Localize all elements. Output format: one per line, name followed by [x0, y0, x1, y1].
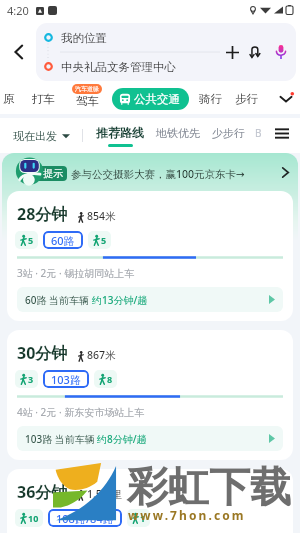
staticText: 4:20	[7, 3, 29, 18]
button[interactable]: Back	[4, 37, 34, 67]
staticText: 103路 当前车辆	[25, 432, 95, 446]
staticText: 3站 · 2元 · 锡拉胡同站上车	[17, 266, 135, 280]
staticText: 3	[28, 373, 34, 385]
staticText: 30分钟	[17, 342, 68, 364]
staticText: 103路	[51, 372, 81, 387]
staticText: 公共交通	[134, 92, 180, 106]
button[interactable]: 公共交通	[112, 88, 189, 110]
button[interactable]: 30分钟	[7, 330, 293, 460]
staticText: 约13分钟/趟	[92, 293, 148, 307]
button[interactable]: Add waypoint	[220, 40, 244, 64]
button[interactable]: 103路 当前车辆	[17, 426, 283, 451]
staticText: 我的位置	[61, 31, 107, 45]
staticText: 60路	[51, 233, 75, 248]
button[interactable]: 现在出发	[13, 129, 70, 143]
staticText: 5	[28, 234, 34, 246]
staticText: 36分钟	[17, 481, 68, 503]
staticText: 汽车道缘	[75, 85, 99, 93]
staticText: 1	[140, 512, 146, 524]
staticText: 4站 · 2元 · 新东安市场站上车	[17, 405, 145, 419]
button[interactable]: 驾车	[76, 94, 99, 108]
staticText: 854米	[87, 209, 116, 223]
staticText: 8	[107, 373, 113, 385]
button[interactable]: 步行	[235, 92, 258, 106]
button[interactable]: 推荐路线	[96, 125, 144, 147]
staticText: 60路 当前车辆	[25, 293, 90, 307]
button[interactable]: 28分钟	[7, 191, 293, 321]
button[interactable]: 骑行	[199, 92, 222, 106]
button[interactable]: 我的位置	[36, 23, 220, 52]
button[interactable]: 60路 当前车辆	[17, 287, 283, 312]
button[interactable]: Voice search	[268, 39, 294, 65]
staticText: 28分钟	[17, 203, 68, 225]
button[interactable]: 36分钟	[7, 469, 293, 533]
button[interactable]: Expand travel modes	[274, 87, 298, 111]
button[interactable]: 打车	[32, 92, 55, 106]
staticText: B	[255, 126, 262, 140]
staticText: 108路/84路	[56, 511, 114, 526]
staticText: 参与公交摄影大赛，赢100元京东卡→	[71, 167, 245, 181]
staticText: 中央礼品文务管理中心	[61, 60, 176, 74]
staticText: 彩虹下载	[127, 462, 291, 514]
staticText: 1.5公里	[87, 487, 123, 501]
staticText: 10	[28, 512, 39, 524]
button[interactable]: Swap start and destination	[244, 40, 268, 64]
button[interactable]: 原	[3, 92, 15, 106]
staticText: 现在出发	[13, 129, 57, 143]
staticText: 提示	[43, 167, 63, 180]
staticText: 5	[101, 234, 107, 246]
staticText: 约8分钟/趟	[97, 432, 147, 446]
button[interactable]: Route options	[270, 121, 294, 145]
button[interactable]: 中央礼品文务管理中心	[36, 52, 220, 81]
button[interactable]: 地铁优先	[156, 126, 200, 140]
staticText: 867米	[87, 348, 116, 362]
button[interactable]: 少步行	[212, 126, 245, 140]
staticText: www.7hon.com	[128, 507, 246, 523]
button[interactable]: 提示	[2, 153, 298, 241]
staticText: 推荐路线	[96, 125, 144, 140]
